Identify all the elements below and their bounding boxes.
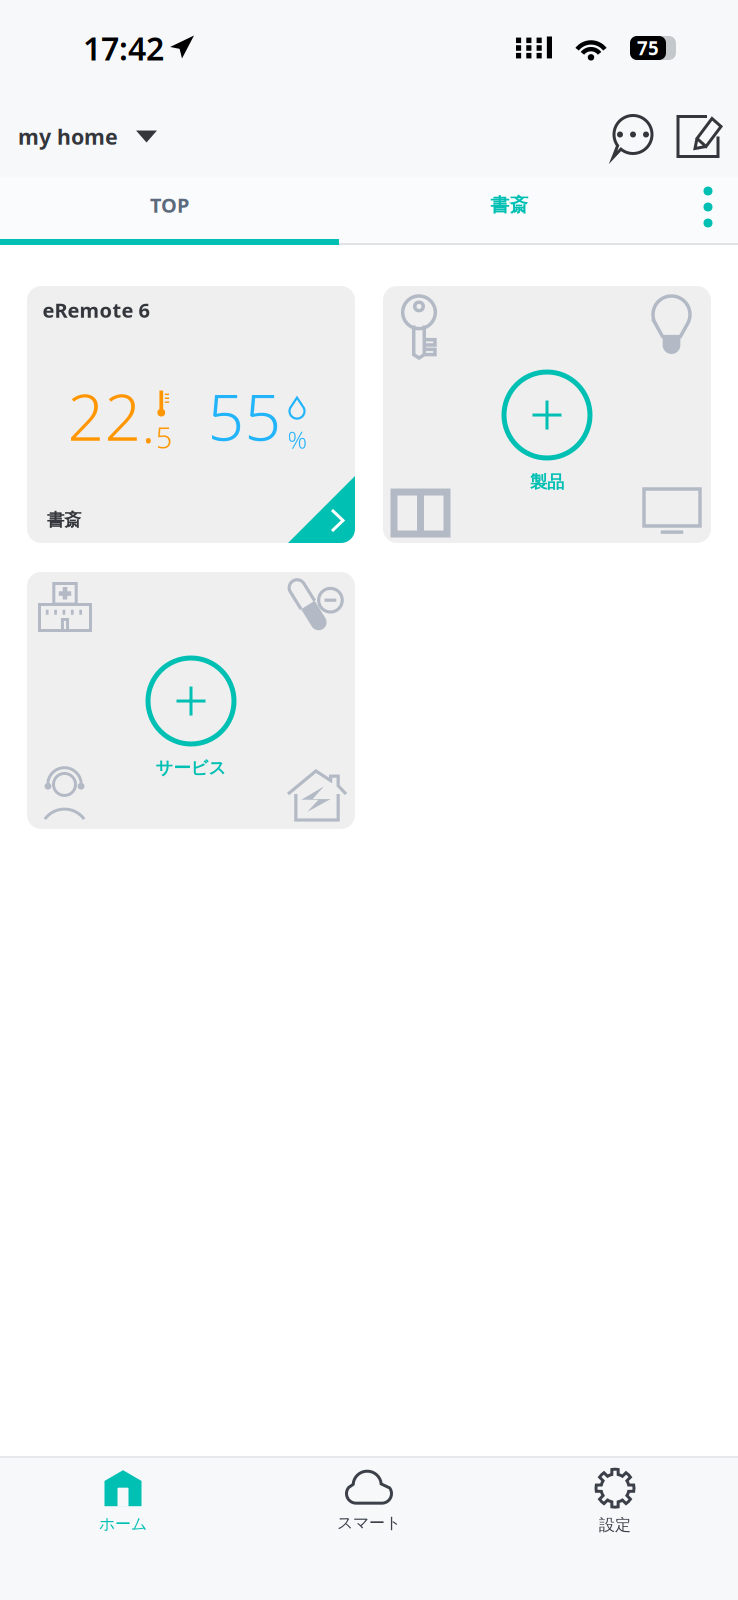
staticText: 書斎	[47, 509, 81, 531]
button[interactable]: スマート	[246, 1458, 492, 1546]
button[interactable]: TOP	[0, 177, 335, 239]
staticText: 22	[67, 373, 141, 458]
button[interactable]: my home	[0, 96, 171, 177]
staticText: ホーム	[99, 1514, 147, 1534]
staticText: eRemote 6	[42, 297, 149, 323]
button[interactable]: eRemote 6	[27, 286, 355, 543]
staticText: TOP	[150, 192, 189, 218]
staticText: 5	[155, 417, 172, 456]
staticText: 17:42	[83, 27, 164, 69]
button[interactable]: More options	[682, 177, 738, 239]
staticText: %	[287, 424, 306, 455]
staticText: 書斎	[490, 193, 528, 216]
staticText: my home	[18, 122, 118, 151]
button[interactable]: ホーム	[0, 1458, 246, 1546]
button[interactable]: 設定	[492, 1458, 738, 1546]
button[interactable]: Messages	[600, 96, 666, 177]
button[interactable]: Compose	[666, 96, 732, 177]
staticText: .	[141, 384, 155, 458]
staticText: 設定	[599, 1515, 631, 1535]
button[interactable]: 書斎	[335, 177, 674, 239]
staticText: スマート	[337, 1513, 401, 1533]
button[interactable]	[487, 355, 607, 475]
staticText: 75	[637, 36, 659, 60]
button[interactable]	[131, 641, 251, 761]
staticText: サービス	[155, 757, 226, 779]
staticText: 55	[207, 373, 281, 458]
staticText: 製品	[530, 471, 564, 493]
